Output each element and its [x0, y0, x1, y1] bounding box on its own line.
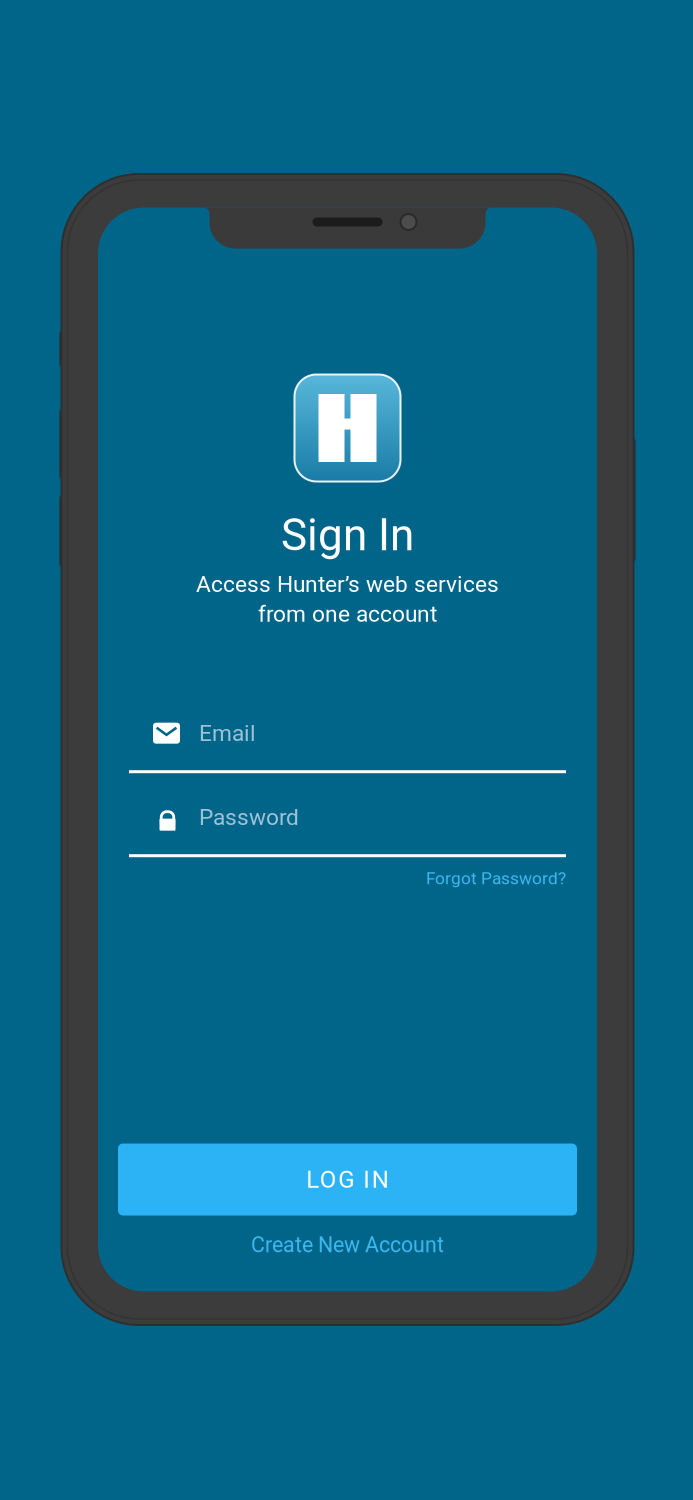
staticText: LOG IN: [306, 1165, 389, 1193]
staticText: Password: [199, 804, 299, 830]
button[interactable]: LOG IN: [118, 1143, 577, 1215]
staticText: Create New Account: [251, 1232, 444, 1257]
staticText: Forgot Password?: [426, 868, 566, 888]
staticText: Email: [199, 720, 256, 746]
button[interactable]: Email: [129, 720, 566, 773]
button[interactable]: Forgot Password?: [426, 868, 566, 888]
button[interactable]: Create New Account: [251, 1232, 444, 1257]
staticText: Access Hunter’s web services: [196, 571, 499, 598]
staticText: Sign In: [281, 509, 414, 561]
staticText: from one account: [258, 601, 437, 627]
button[interactable]: Password: [129, 804, 566, 857]
